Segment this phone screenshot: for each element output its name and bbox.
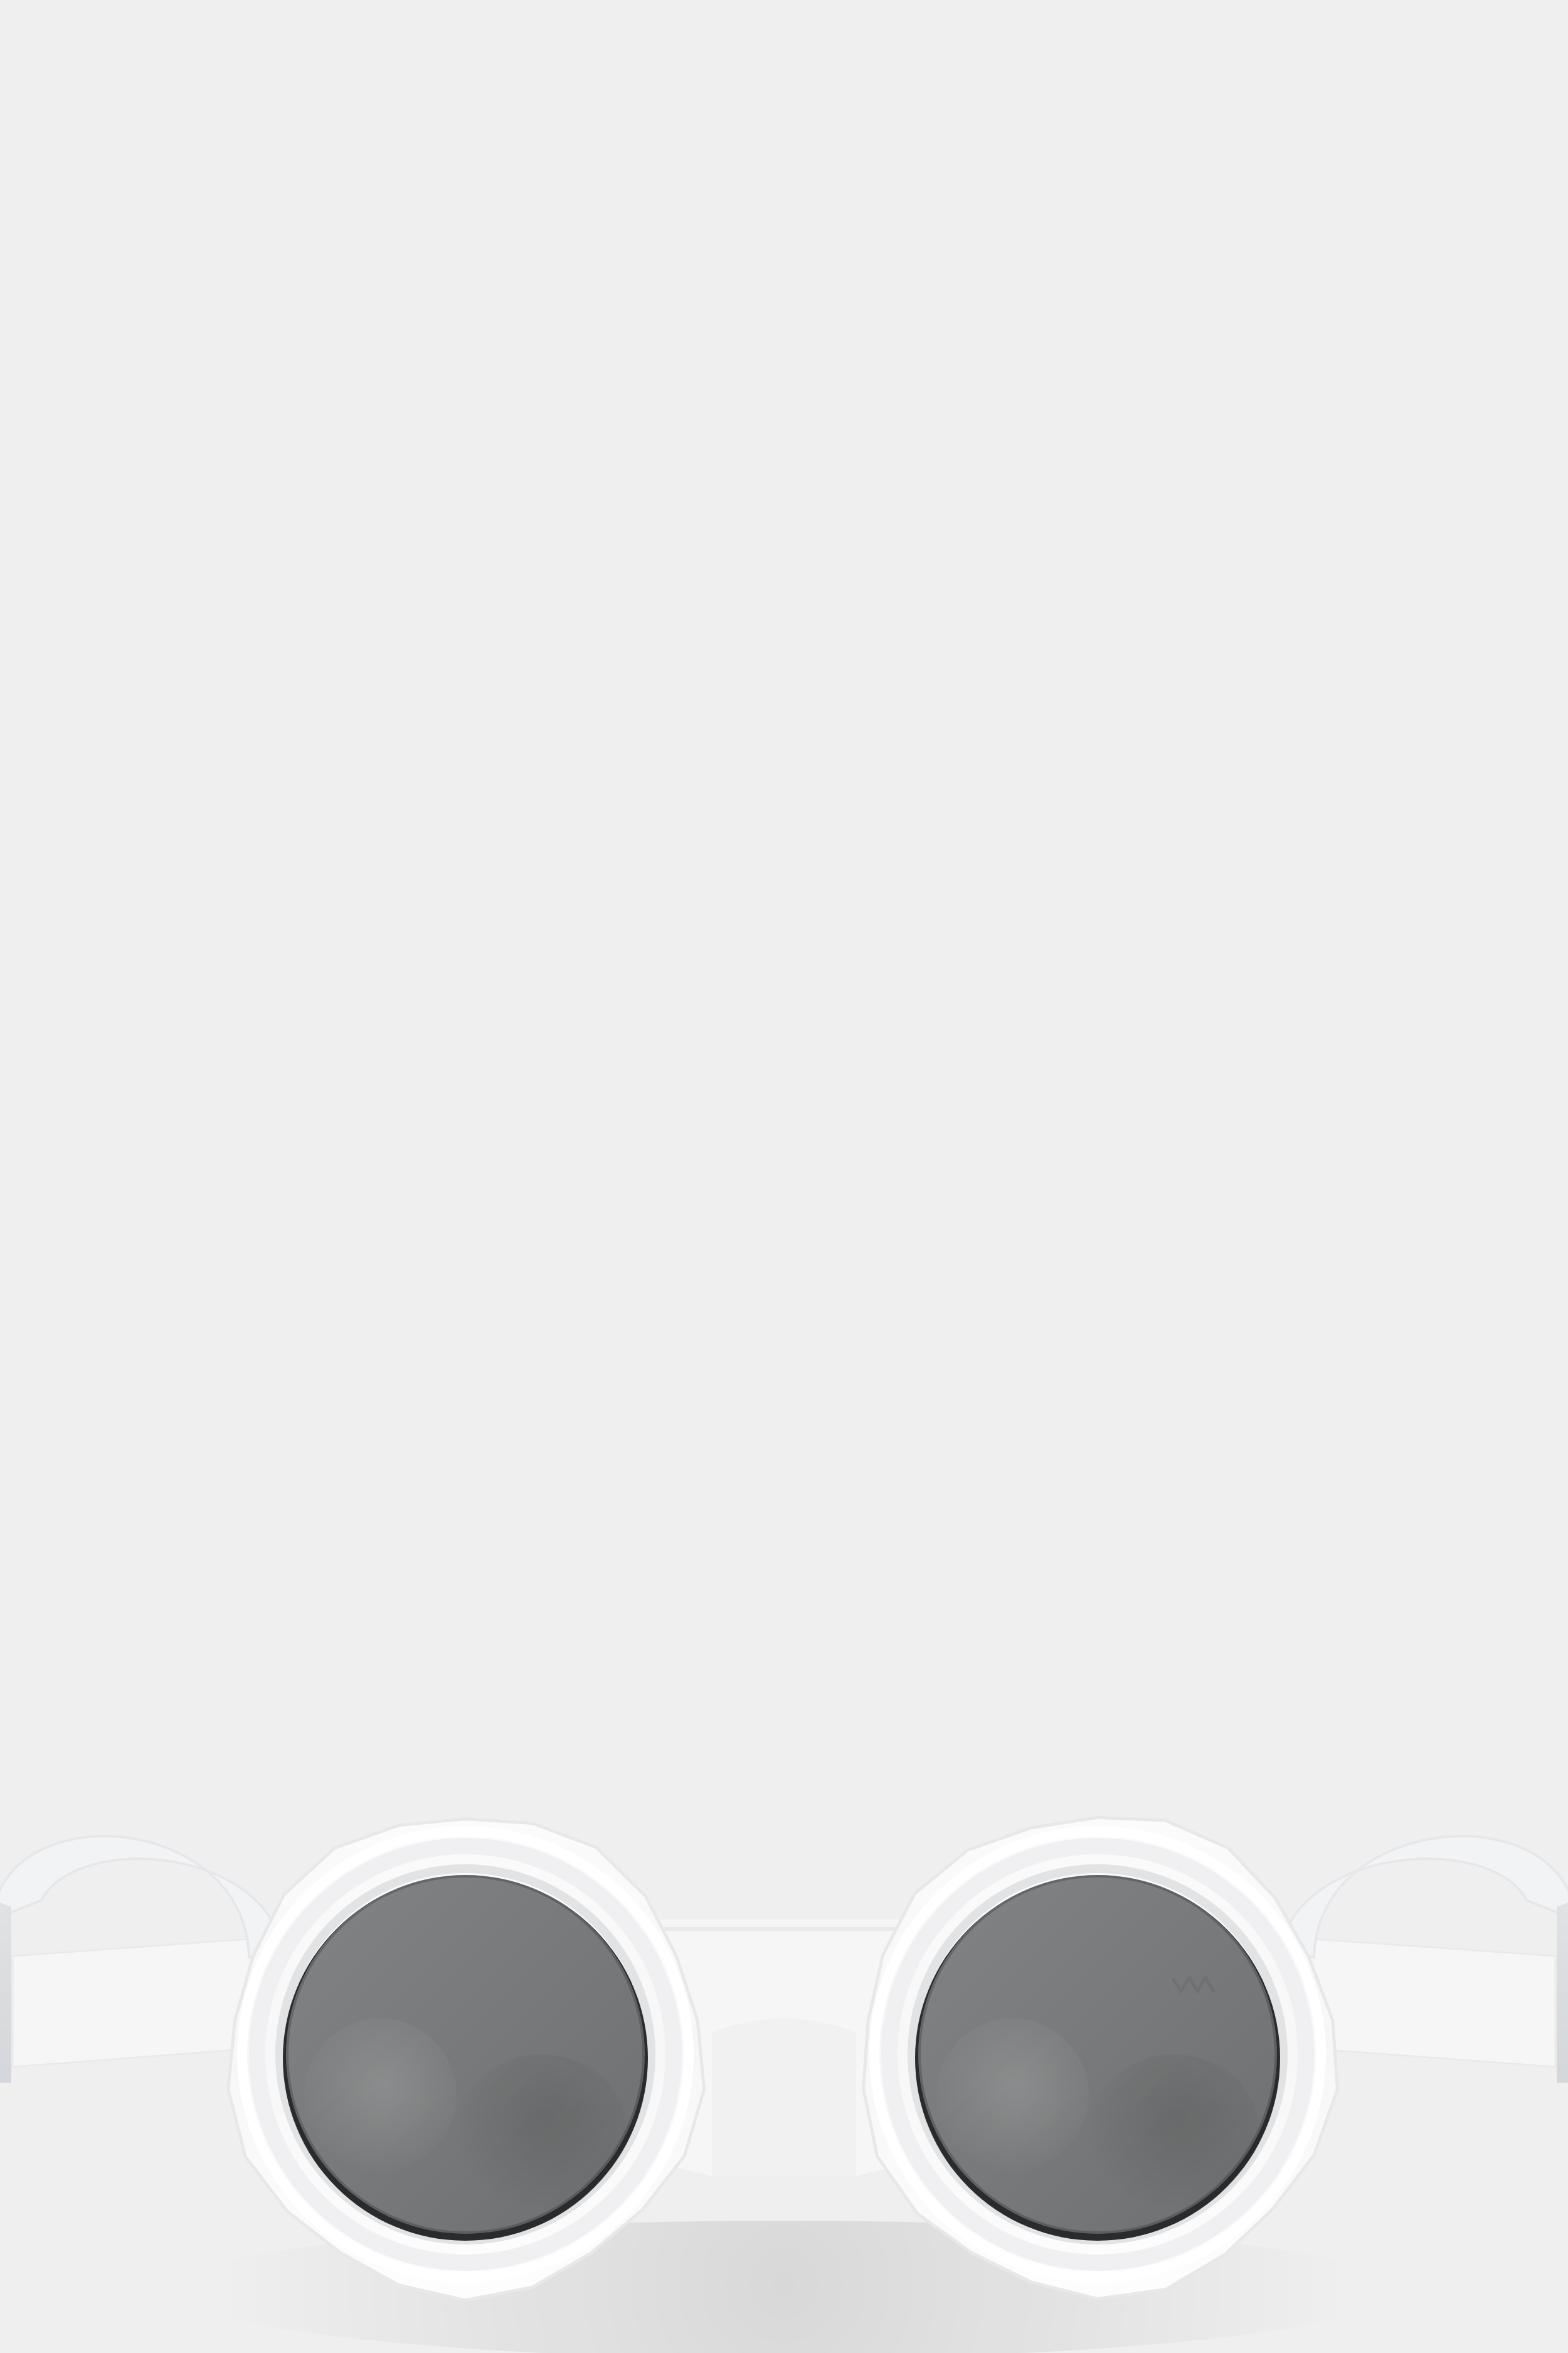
button[interactable]: White round sunglasses product photo <box>0 0 1568 2353</box>
